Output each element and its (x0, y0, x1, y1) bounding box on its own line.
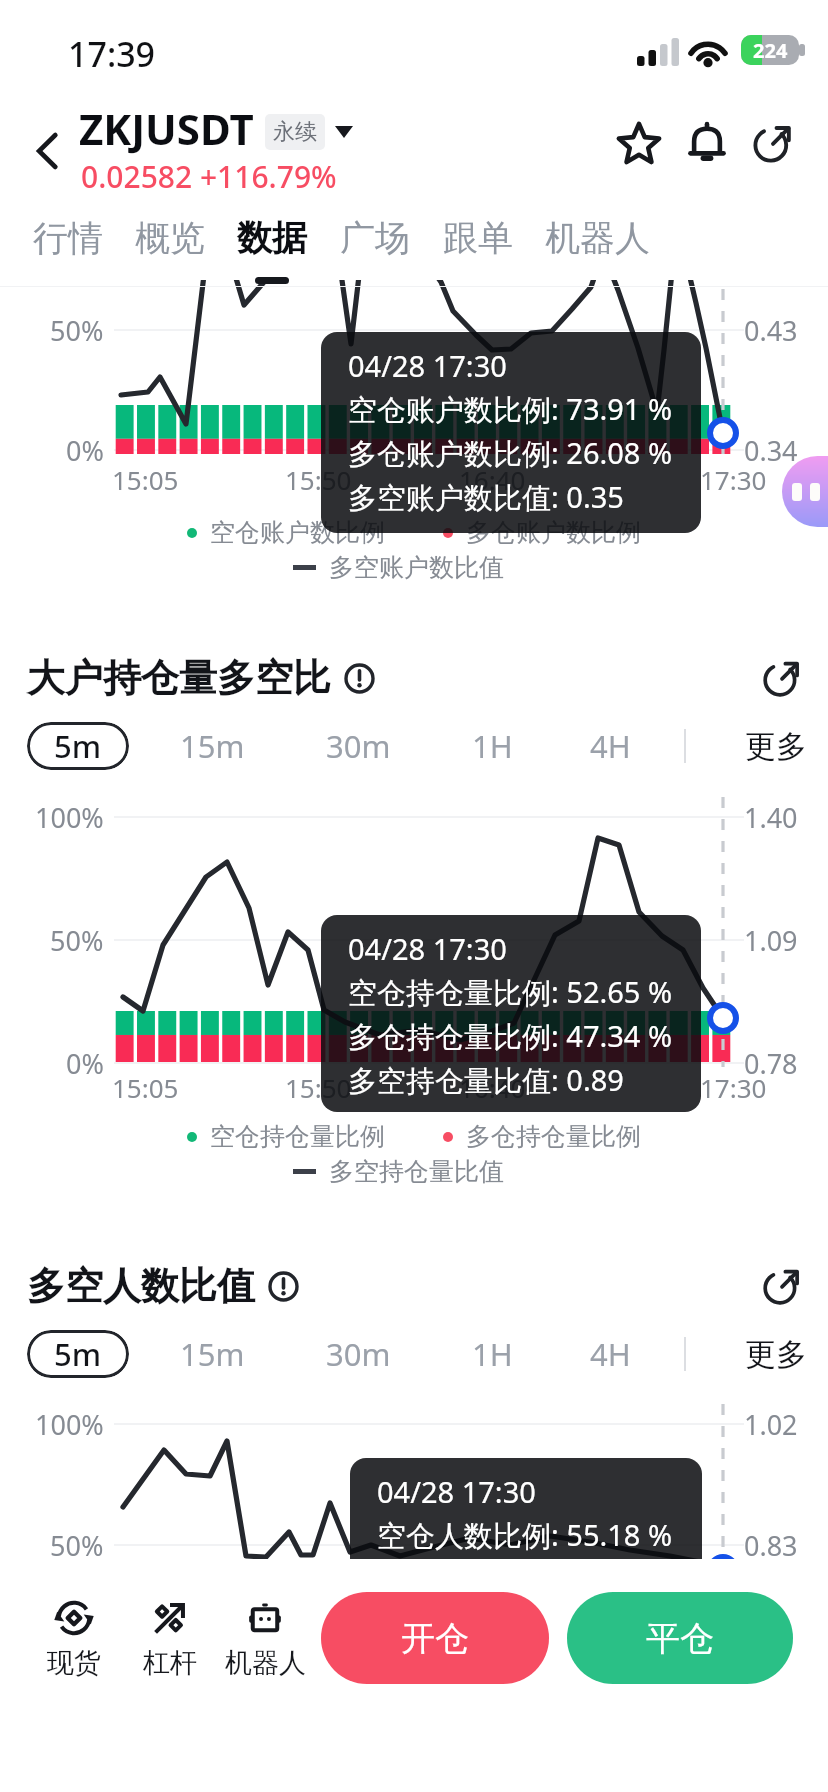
staticText: 1H (472, 1333, 513, 1375)
button[interactable]: 5m (27, 1330, 129, 1378)
button[interactable]: 机器人 (205, 1598, 325, 1694)
button[interactable]: 更多 (745, 722, 828, 770)
button[interactable]: 1H (442, 722, 542, 770)
staticText: 更多 (745, 1335, 807, 1374)
staticText: 4H (590, 725, 631, 767)
button[interactable]: Favorite (608, 112, 670, 174)
staticText: 15:05 (112, 462, 179, 497)
staticText: 空仓持仓量比例 (210, 1121, 385, 1152)
staticText: 多仓持仓量比例: 47.34 % (348, 1016, 673, 1056)
staticText: 行情 (33, 216, 103, 260)
staticText: 杠杆 (143, 1646, 197, 1680)
staticText: 大户持仓量多空比 (27, 654, 331, 702)
staticText: 30m (326, 1333, 391, 1375)
button[interactable]: Assistant pause (782, 456, 828, 527)
staticText: 永续 (273, 118, 317, 146)
staticText: 0.02582 +116.79% (81, 156, 337, 197)
button[interactable]: Share chart (754, 1258, 810, 1314)
staticText: 0.43 (744, 312, 798, 349)
button[interactable]: 现货 (14, 1598, 134, 1694)
staticText: 机器人 (545, 216, 650, 260)
staticText: 空仓账户数比例 (210, 517, 385, 548)
staticText: ZKJUSDT (79, 100, 254, 157)
button[interactable]: 广场 (326, 208, 424, 268)
button[interactable]: 4H (560, 722, 660, 770)
staticText: 1.40 (744, 799, 798, 836)
staticText: 数据 (237, 216, 307, 260)
staticText: 50% (50, 1527, 104, 1564)
staticText: 多仓账户数比例: 26.08 % (348, 433, 673, 473)
staticText: 5m (54, 1333, 102, 1375)
button[interactable]: 行情 (19, 208, 117, 268)
staticText: 空仓持仓量比例: 52.65 % (348, 972, 673, 1012)
staticText: 15:05 (112, 1070, 179, 1105)
staticText: 多空账户数比值: 0.35 (348, 477, 624, 517)
button[interactable]: 1H (442, 1330, 542, 1378)
button[interactable]: 机器人 (531, 208, 664, 268)
staticText: 04/28 17:30 (377, 1472, 536, 1511)
staticText: 空仓账户数比例: 73.91 % (348, 389, 673, 429)
staticText: 04/28 17:30 (348, 929, 507, 968)
staticText: 16:40 (459, 462, 526, 497)
button[interactable]: 15m (162, 1330, 262, 1378)
staticText: 多空持仓量比值: 0.89 (348, 1060, 624, 1100)
button[interactable]: 30m (308, 722, 408, 770)
staticText: 0.34 (744, 432, 798, 469)
staticText: 100% (35, 1406, 104, 1443)
staticText: 4H (590, 1333, 631, 1375)
button[interactable]: 数据 (223, 208, 321, 268)
staticText: 广场 (340, 216, 410, 260)
staticText: 15m (180, 1333, 245, 1375)
button[interactable]: Back (16, 118, 78, 184)
staticText: 多空账户数比值 (329, 552, 504, 583)
button[interactable]: 概览 (121, 208, 219, 268)
staticText: 15m (180, 725, 245, 767)
staticText: 机器人 (225, 1646, 306, 1680)
staticText: 空仓人数比例: 55.18 % (377, 1515, 673, 1555)
staticText: 0.78 (744, 1045, 798, 1082)
staticText: 开仓 (401, 1617, 469, 1660)
button[interactable]: 5m (27, 722, 129, 770)
button[interactable]: 更多 (745, 1330, 828, 1378)
staticText: 30m (326, 725, 391, 767)
staticText: 17:39 (68, 31, 156, 77)
staticText: 1H (472, 725, 513, 767)
staticText: 更多 (745, 727, 807, 766)
staticText: 跟单 (443, 216, 513, 260)
staticText: 17:30 (700, 462, 767, 497)
staticText: 1.09 (744, 922, 798, 959)
staticText: 100% (35, 799, 104, 836)
staticText: 现货 (47, 1646, 101, 1680)
button[interactable]: 30m (308, 1330, 408, 1378)
staticText: 多空持仓量比值 (329, 1156, 504, 1187)
staticText: 15:50 (285, 1070, 352, 1105)
button[interactable]: Share (742, 112, 804, 174)
staticText: 多空人数比值 (27, 1262, 255, 1310)
staticText: 0.83 (744, 1527, 798, 1564)
staticText: 50% (50, 312, 104, 349)
staticText: 0% (66, 1045, 104, 1082)
staticText: 224 (753, 37, 788, 64)
button[interactable]: 跟单 (429, 208, 527, 268)
button[interactable]: 平仓 (567, 1592, 793, 1684)
staticText: 16:40 (459, 1070, 526, 1105)
staticText: 多仓账户数比例 (466, 517, 641, 548)
staticText: 5m (54, 725, 102, 767)
button[interactable]: Price alerts (676, 112, 738, 174)
button[interactable]: Share chart (754, 650, 810, 706)
staticText: 15:50 (285, 462, 352, 497)
button[interactable]: 15m (162, 722, 262, 770)
button[interactable]: 4H (560, 1330, 660, 1378)
button[interactable]: 开仓 (321, 1592, 549, 1684)
button[interactable]: 杠杆 (110, 1598, 230, 1694)
staticText: 50% (50, 922, 104, 959)
staticText: 多仓持仓量比例 (466, 1121, 641, 1152)
staticText: 17:30 (700, 1070, 767, 1105)
staticText: 概览 (135, 216, 205, 260)
staticText: 0% (66, 432, 104, 469)
staticText: 平仓 (646, 1617, 714, 1660)
staticText: 04/28 17:30 (348, 346, 507, 385)
staticText: 1.02 (744, 1406, 798, 1443)
